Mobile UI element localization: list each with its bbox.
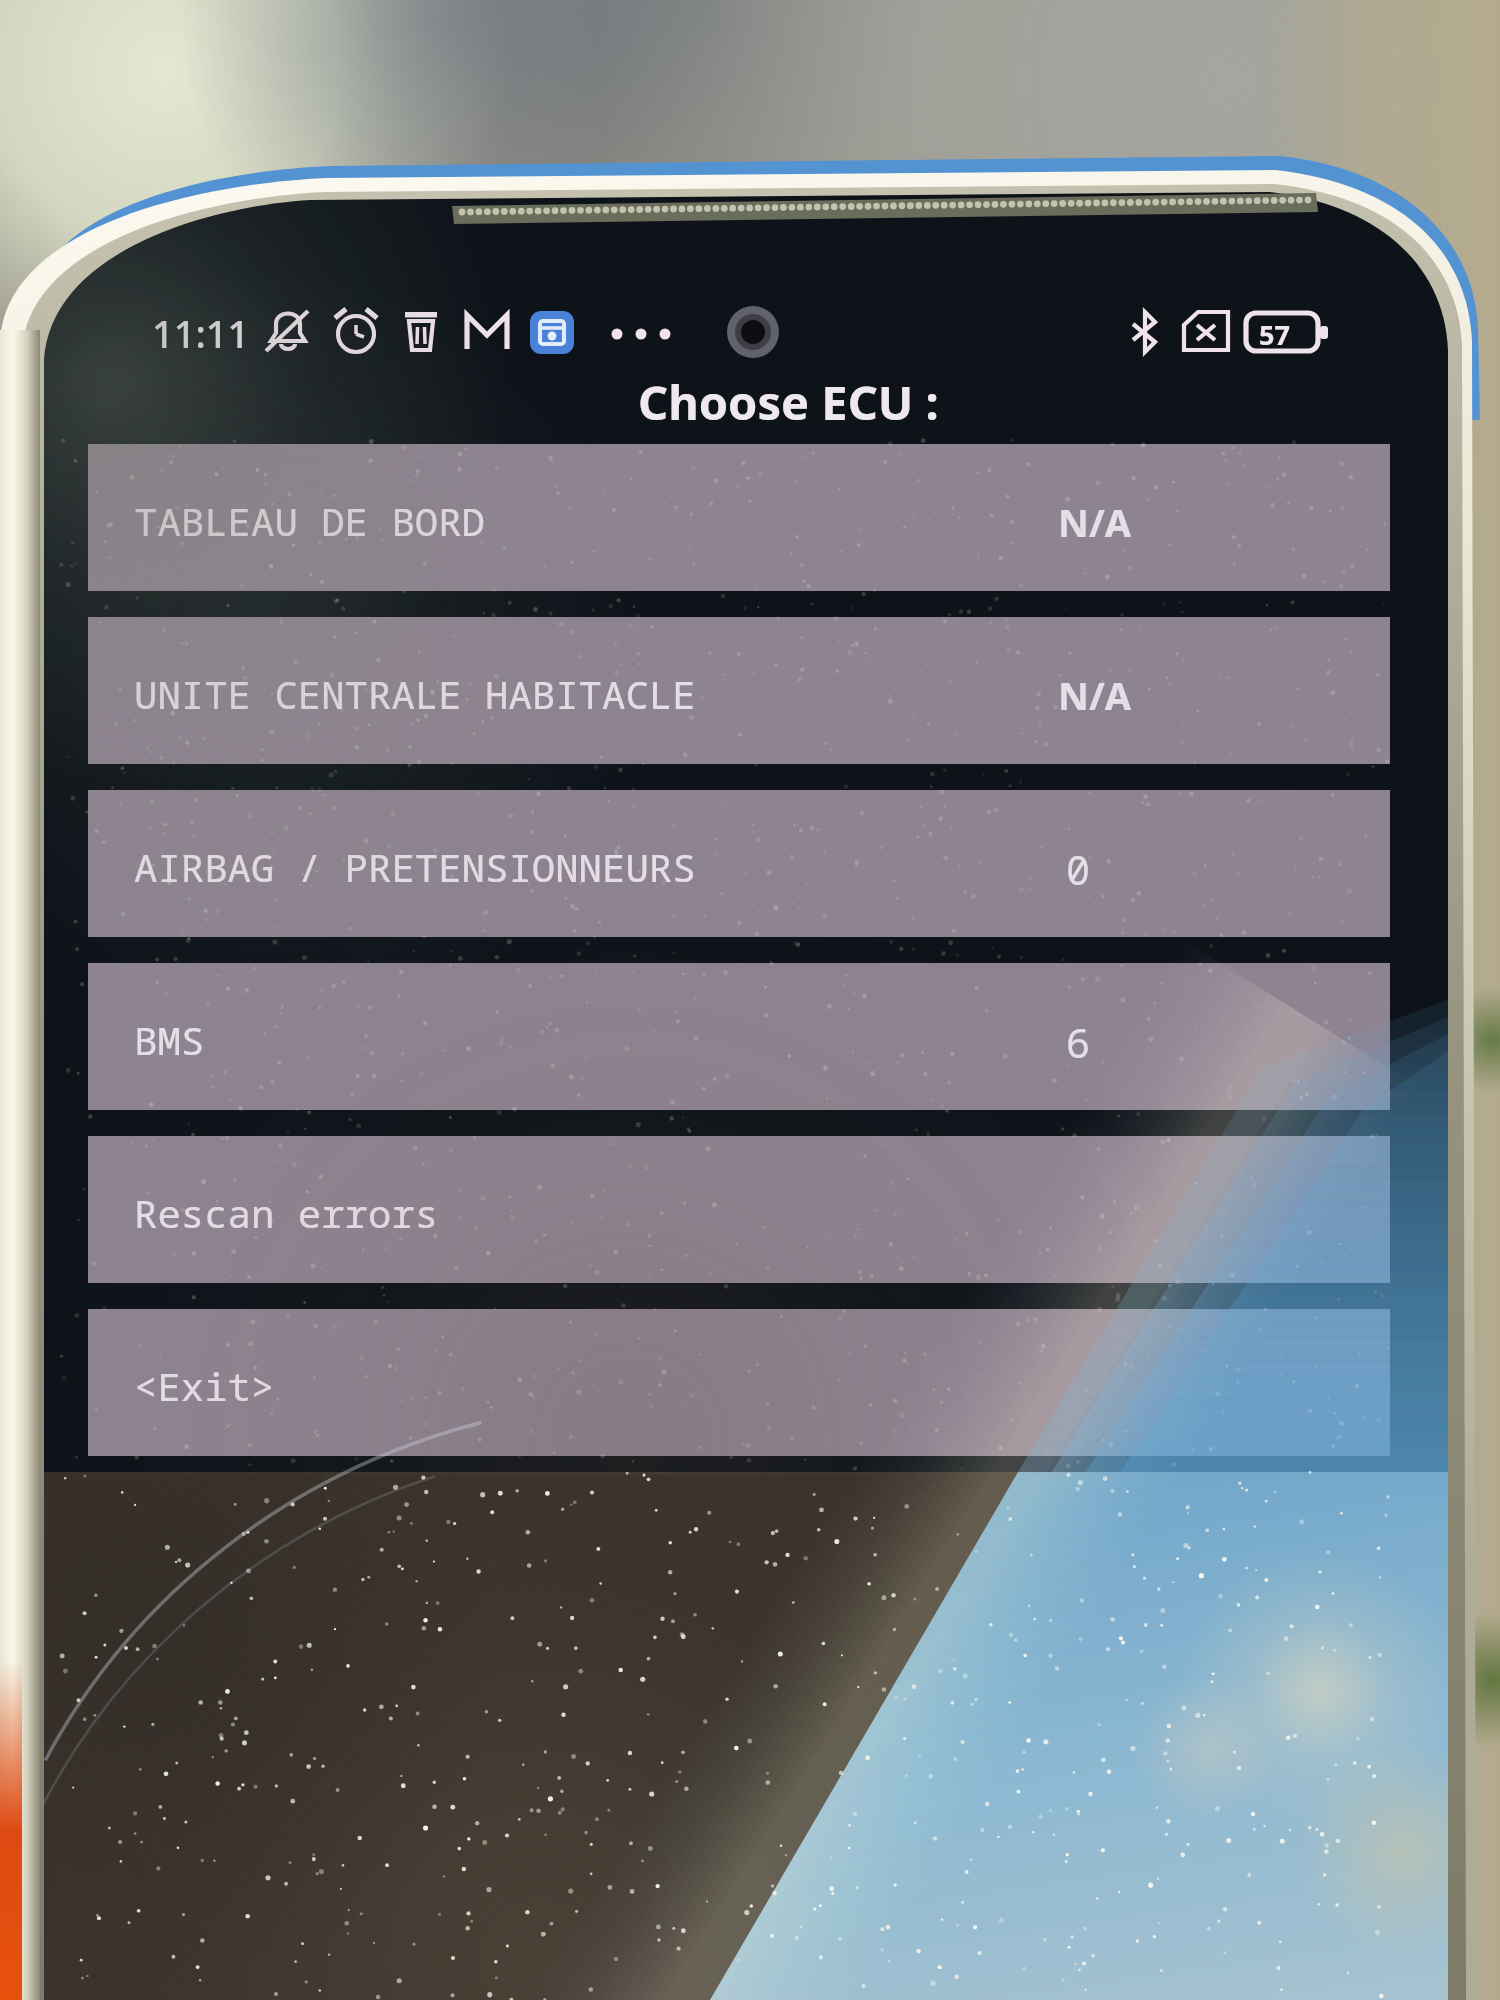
- button[interactable]: Bluetooth on: [1113, 302, 1177, 364]
- staticText: Rescan errors: [134, 1186, 439, 1239]
- button[interactable]: App notification: [520, 302, 584, 364]
- staticText: 57: [1259, 316, 1290, 353]
- button[interactable]: No SIM card: [1174, 302, 1238, 364]
- staticText: N/A: [1058, 669, 1131, 721]
- button[interactable]: Rescan errors: [88, 1136, 1390, 1283]
- staticText: Choose ECU :: [638, 370, 939, 434]
- button[interactable]: More notifications: [585, 302, 649, 364]
- button[interactable]: Silent mode on: [256, 302, 320, 364]
- button[interactable]: Gmail: [455, 302, 519, 364]
- button[interactable]: UNITE CENTRALE HABITACLE: [88, 617, 1390, 764]
- button[interactable]: Battery 57 percent: [1246, 302, 1310, 364]
- staticText: AIRBAG / PRETENSIONNEURS: [134, 840, 696, 893]
- button[interactable]: <Exit>: [88, 1309, 1390, 1456]
- staticText: <Exit>: [134, 1359, 275, 1412]
- staticText: N/A: [1058, 496, 1131, 548]
- button[interactable]: Delete: [389, 302, 453, 364]
- staticText: 6: [1066, 1015, 1090, 1069]
- button[interactable]: Alarm set: [324, 302, 388, 364]
- staticText: BMS: [134, 1013, 205, 1066]
- staticText: 0: [1066, 842, 1090, 896]
- staticText: 11:11: [152, 307, 250, 359]
- button[interactable]: BMS: [88, 963, 1390, 1110]
- staticText: UNITE CENTRALE HABITACLE: [134, 667, 696, 720]
- staticText: TABLEAU DE BORD: [134, 494, 486, 547]
- button[interactable]: TABLEAU DE BORD: [88, 444, 1390, 591]
- button[interactable]: AIRBAG / PRETENSIONNEURS: [88, 790, 1390, 937]
